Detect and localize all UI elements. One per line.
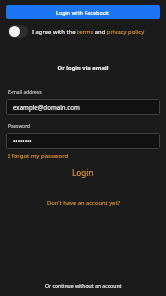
button[interactable]: ••••••••	[6, 133, 160, 149]
button[interactable]: example@domain.com	[6, 99, 160, 115]
staticText: ••••••••	[13, 137, 32, 145]
button[interactable]: Login	[6, 166, 160, 179]
staticText: Don't have an account yet?	[47, 199, 120, 207]
staticText: Or continue without an account	[45, 282, 122, 289]
staticText: example@domain.com	[13, 103, 80, 111]
staticText: Login	[72, 167, 94, 178]
button[interactable]: Agree to terms toggle	[8, 25, 28, 38]
button[interactable]: Or continue without an account	[6, 282, 160, 289]
button[interactable]: I forgot my password	[6, 152, 71, 160]
staticText: Login with Facebook	[56, 9, 110, 16]
staticText: I agree with the terms and privacy polic…	[32, 28, 145, 36]
button[interactable]: Don't have an account yet?	[6, 199, 160, 207]
staticText: Or login via email	[6, 64, 160, 72]
staticText: Password	[8, 123, 31, 130]
staticText: E-mail address	[8, 89, 42, 96]
staticText: I forgot my password	[8, 152, 69, 160]
button[interactable]: Login with Facebook	[6, 5, 160, 19]
